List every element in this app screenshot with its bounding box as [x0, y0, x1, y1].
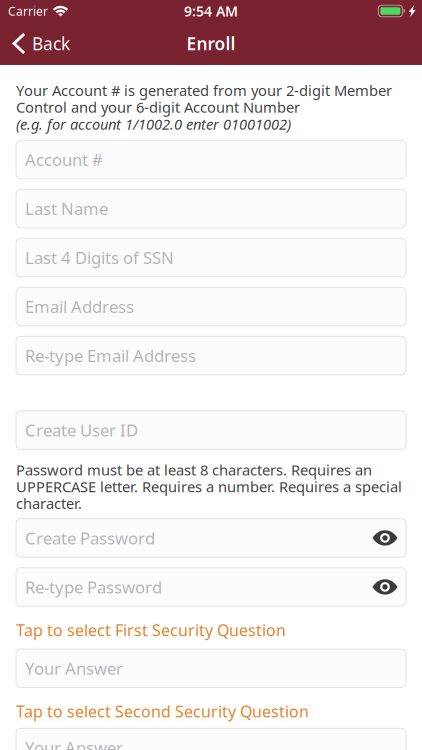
button[interactable]: Your Answer: [16, 649, 406, 687]
staticText: Create User ID: [25, 419, 138, 441]
button[interactable]: Tap to select Second Security Question: [16, 700, 309, 722]
staticText: Email Address: [25, 295, 134, 318]
staticText: Tap to select First Security Question: [16, 619, 286, 641]
button[interactable]: Tap to select First Security Question: [16, 619, 286, 641]
button[interactable]: Create Password: [16, 519, 406, 557]
staticText: Account #: [25, 148, 103, 171]
staticText: 9:54 AM: [184, 1, 238, 21]
staticText: Tap to select Second Security Question: [16, 700, 309, 722]
staticText: Last 4 Digits of SSN: [25, 246, 174, 269]
staticText: Last Name: [25, 197, 108, 220]
staticText: Your Account # is generated from your 2-…: [16, 82, 392, 116]
button[interactable]: Your Answer: [16, 728, 406, 750]
button[interactable]: Back: [0, 22, 82, 65]
staticText: Re-type Email Address: [25, 344, 196, 367]
button[interactable]: Re-type Password: [16, 568, 406, 606]
button[interactable]: Account #: [16, 140, 406, 179]
staticText: Password must be at least 8 characters. …: [16, 461, 402, 512]
staticText: Enroll: [186, 32, 235, 55]
staticText: Re-type Password: [25, 576, 162, 598]
staticText: Your Answer: [25, 657, 123, 680]
button[interactable]: Last Name: [16, 189, 406, 228]
staticText: (e.g. for account 1/1002.0 enter 0100100…: [16, 116, 291, 132]
button[interactable]: Re-type Email Address: [16, 336, 406, 375]
button[interactable]: Create User ID: [16, 411, 406, 449]
staticText: Back: [32, 32, 70, 55]
button[interactable]: Last 4 Digits of SSN: [16, 238, 406, 277]
staticText: Your Answer: [25, 736, 123, 750]
button[interactable]: Email Address: [16, 287, 406, 326]
staticText: Carrier: [8, 3, 48, 19]
staticText: Create Password: [25, 527, 155, 549]
